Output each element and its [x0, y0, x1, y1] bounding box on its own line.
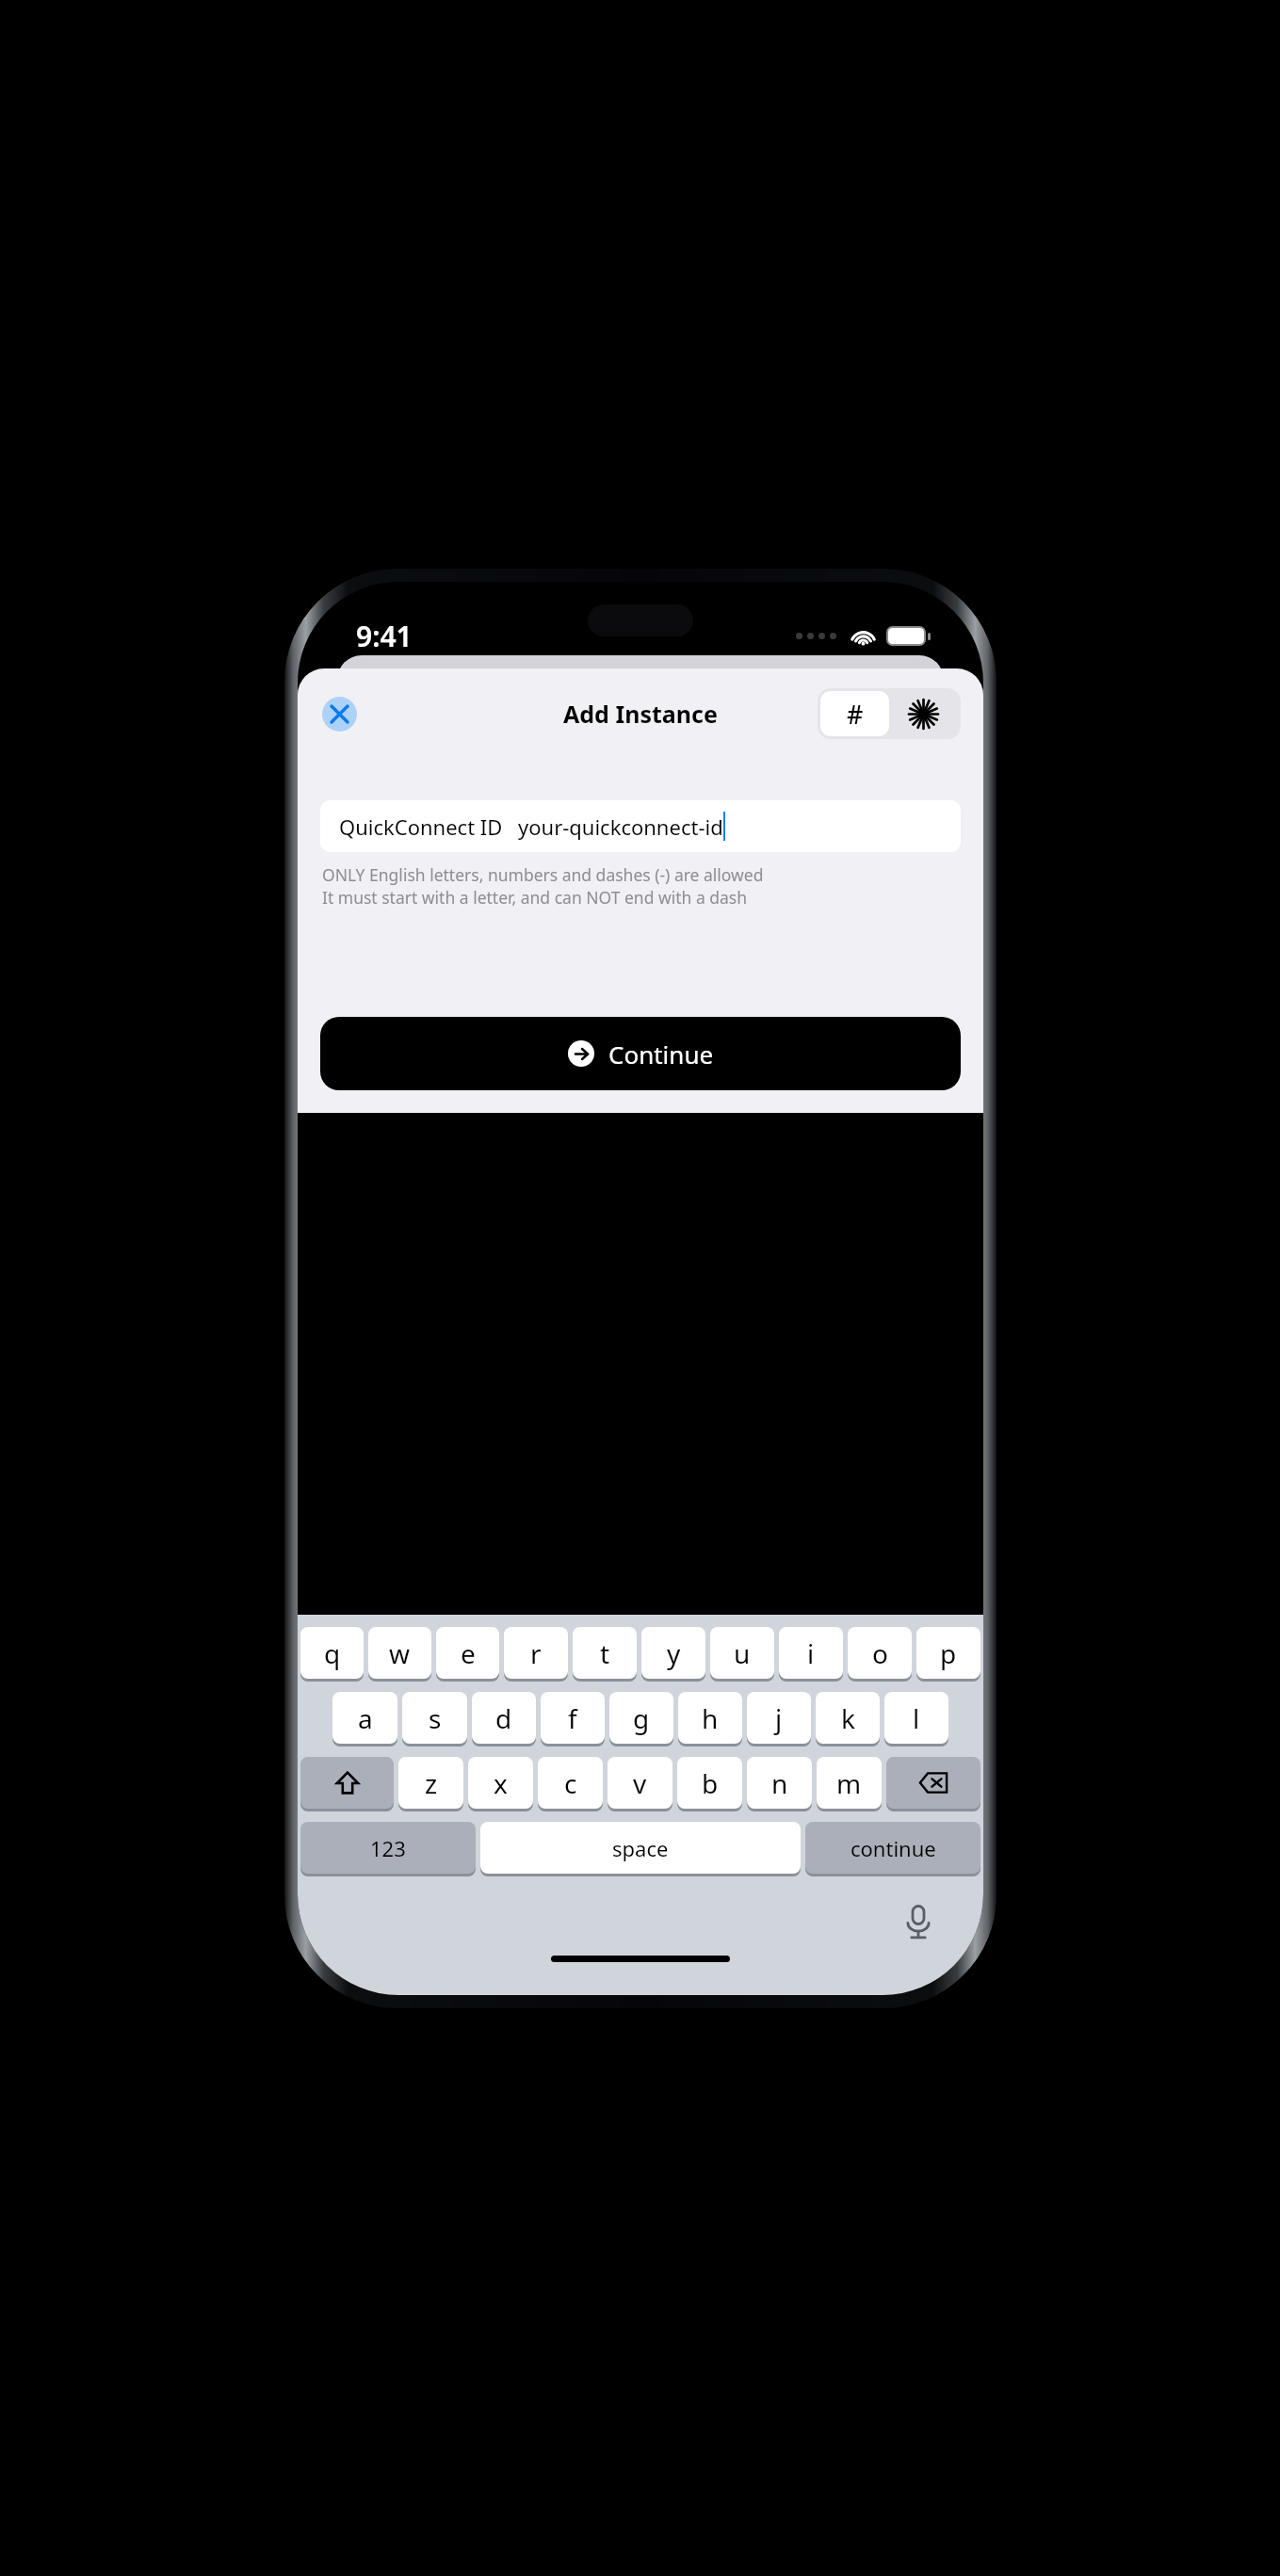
staticText: j	[775, 1700, 783, 1736]
button[interactable]: space	[480, 1822, 801, 1874]
staticText: 123	[370, 1834, 406, 1862]
staticText: q	[324, 1635, 341, 1671]
button[interactable]: Dictation	[897, 1901, 940, 1944]
button[interactable]: y	[641, 1627, 705, 1679]
button[interactable]: s	[402, 1692, 467, 1744]
staticText: w	[389, 1635, 411, 1671]
button[interactable]: n	[747, 1757, 812, 1809]
staticText: v	[633, 1765, 647, 1801]
button[interactable]: k	[816, 1692, 880, 1744]
staticText: m	[836, 1765, 862, 1801]
button[interactable]: m	[817, 1757, 882, 1809]
staticText: h	[702, 1700, 719, 1736]
button[interactable]: 123	[300, 1822, 476, 1874]
button[interactable]: c	[538, 1757, 603, 1809]
staticText: continue	[851, 1834, 936, 1862]
staticText: n	[771, 1765, 788, 1801]
button[interactable]: h	[678, 1692, 742, 1744]
staticText: r	[530, 1635, 542, 1671]
button[interactable]: a	[332, 1692, 397, 1744]
button[interactable]: w	[368, 1627, 431, 1679]
staticText: k	[841, 1700, 855, 1736]
staticText: 9:41	[356, 617, 413, 655]
button[interactable]: v	[608, 1757, 672, 1809]
staticText: Add Instance	[563, 698, 718, 730]
staticText: Continue	[608, 1038, 714, 1071]
staticText: space	[612, 1834, 669, 1862]
button[interactable]: i	[779, 1627, 843, 1679]
staticText: g	[633, 1700, 650, 1736]
staticText: #	[847, 697, 864, 732]
staticText: z	[425, 1765, 438, 1801]
staticText: e	[461, 1635, 476, 1671]
button[interactable]: u	[710, 1627, 774, 1679]
button[interactable]: x	[468, 1757, 533, 1809]
button[interactable]: p	[916, 1627, 980, 1679]
staticText: l	[913, 1700, 920, 1736]
button[interactable]: o	[848, 1627, 912, 1679]
button[interactable]: e	[436, 1627, 499, 1679]
staticText: It must start with a letter, and can NOT…	[322, 886, 748, 909]
staticText: f	[568, 1700, 577, 1736]
button[interactable]: Backspace	[886, 1757, 980, 1809]
staticText: o	[872, 1635, 888, 1671]
staticText: i	[807, 1635, 815, 1671]
staticText: t	[600, 1635, 610, 1671]
button[interactable]: Shift	[300, 1757, 394, 1809]
button[interactable]: t	[573, 1627, 637, 1679]
staticText: a	[358, 1700, 373, 1736]
button[interactable]: continue	[805, 1822, 980, 1874]
button[interactable]: QuickConnect ID	[320, 800, 961, 852]
staticText: p	[940, 1635, 957, 1671]
button[interactable]: d	[472, 1692, 536, 1744]
button[interactable]: Continue	[320, 1017, 961, 1090]
button[interactable]: QuickConnect ID mode	[820, 691, 889, 736]
staticText: ONLY English letters, numbers and dashes…	[322, 863, 764, 886]
button[interactable]: Close	[322, 697, 357, 732]
staticText: c	[564, 1765, 577, 1801]
staticText: u	[734, 1635, 751, 1671]
button[interactable]: r	[504, 1627, 568, 1679]
staticText: b	[702, 1765, 719, 1801]
staticText: s	[429, 1700, 442, 1736]
staticText: your-quickconnect-id	[518, 813, 723, 841]
staticText: x	[494, 1765, 508, 1801]
staticText: y	[667, 1635, 681, 1671]
button[interactable]: Custom address mode	[889, 691, 958, 736]
button[interactable]: g	[609, 1692, 673, 1744]
button[interactable]: z	[398, 1757, 463, 1809]
staticText: QuickConnect ID	[339, 813, 503, 841]
button[interactable]: l	[884, 1692, 948, 1744]
staticText: d	[495, 1700, 512, 1736]
button[interactable]: j	[747, 1692, 811, 1744]
button[interactable]: q	[300, 1627, 364, 1679]
button[interactable]: b	[677, 1757, 742, 1809]
button[interactable]: f	[541, 1692, 605, 1744]
